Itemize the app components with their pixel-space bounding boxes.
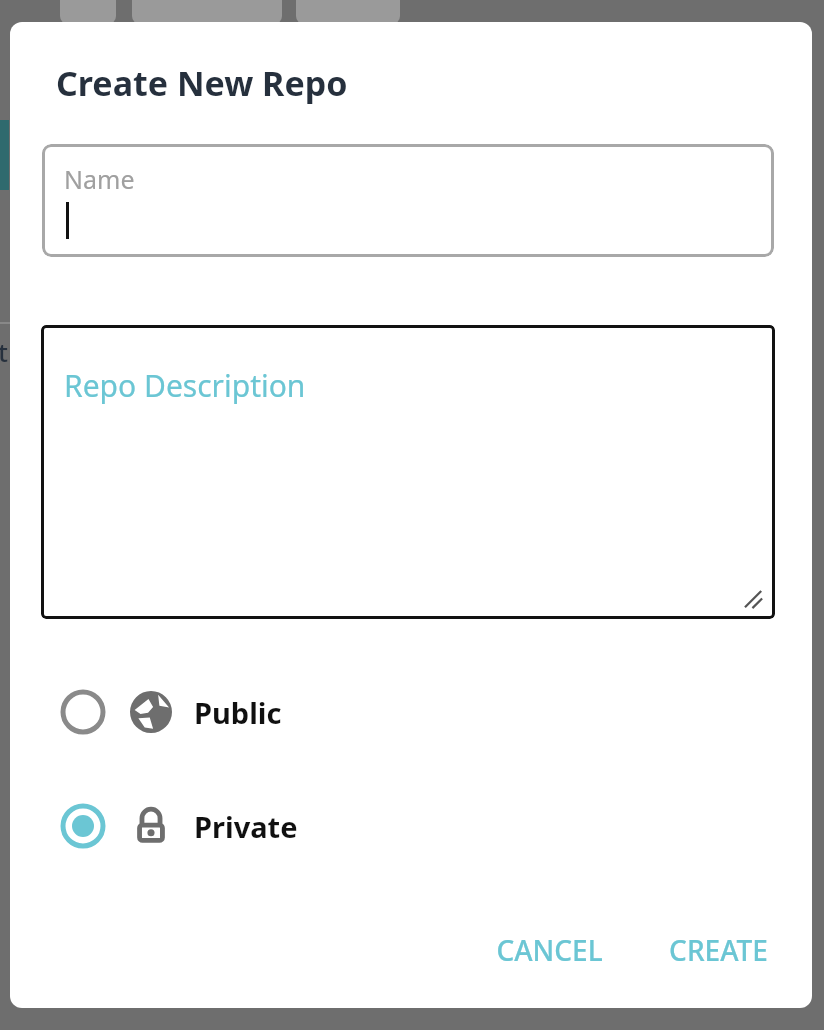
- staticText: CREATE: [669, 931, 768, 969]
- button[interactable]: CANCEL: [482, 923, 617, 977]
- other: Public repository: [128, 689, 174, 735]
- other: Private repository: [128, 803, 174, 849]
- staticText: Private: [194, 807, 298, 846]
- staticText: Repo Description: [64, 365, 306, 406]
- staticText: t: [0, 334, 8, 369]
- staticText: Name: [64, 162, 135, 196]
- staticText: Create New Repo: [56, 60, 348, 106]
- button[interactable]: CREATE: [655, 923, 782, 977]
- button[interactable]: Name: [42, 144, 774, 257]
- button[interactable]: Private repository: [10, 791, 812, 861]
- staticText: CANCEL: [496, 931, 603, 969]
- staticText: Public: [194, 693, 282, 732]
- button[interactable]: Repo Description: [41, 325, 775, 619]
- button[interactable]: Public repository: [10, 677, 812, 747]
